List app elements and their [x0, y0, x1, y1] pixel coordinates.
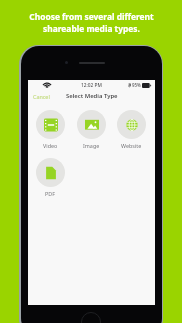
staticText: shareable media types.	[43, 23, 140, 34]
staticText: Website	[121, 142, 142, 149]
staticText: 95%	[132, 82, 141, 88]
staticText: Video	[43, 142, 58, 149]
button[interactable]: Video	[29, 110, 71, 149]
button[interactable]: Cancel	[28, 91, 54, 102]
staticText: Select Media Type	[66, 92, 118, 100]
button[interactable]: PDF	[29, 158, 71, 197]
button[interactable]: Image	[70, 110, 112, 149]
staticText: PDF	[45, 190, 55, 197]
staticText: Cancel	[33, 93, 50, 100]
button[interactable]: Website	[110, 110, 152, 149]
staticText: Choose from several different	[29, 11, 154, 22]
staticText: Image	[83, 142, 100, 149]
staticText: 12:02 PM	[81, 82, 102, 89]
